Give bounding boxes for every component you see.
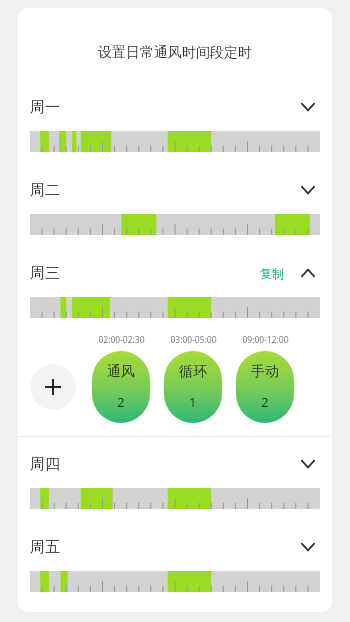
staticText: 周二 [30, 181, 60, 200]
button[interactable]: 循环 [164, 351, 222, 423]
staticText: 03:00-05:00 [170, 334, 217, 346]
staticText: 通风 [107, 363, 135, 381]
staticText: 09:00-12:00 [242, 334, 289, 346]
staticText: 周一 [30, 98, 60, 117]
button[interactable] [30, 131, 320, 152]
button[interactable]: 周四 [30, 445, 320, 483]
staticText: 循环 [179, 363, 207, 381]
staticText: 设置日常通风时间段定时 [98, 44, 252, 62]
button[interactable]: Collapse [296, 261, 320, 285]
staticText: 周五 [30, 538, 60, 557]
button[interactable]: Expand [296, 178, 320, 202]
button[interactable] [30, 571, 320, 592]
button[interactable]: 周五 [30, 528, 320, 566]
staticText: 手动 [251, 363, 279, 381]
button[interactable]: 复制 [258, 266, 286, 281]
button[interactable]: Add schedule [30, 364, 76, 410]
button[interactable]: 周二 [30, 171, 320, 209]
button[interactable]: Expand [296, 95, 320, 119]
staticText: 2 [117, 393, 125, 411]
button[interactable]: Expand [296, 452, 320, 476]
button[interactable]: Expand [296, 535, 320, 559]
staticText: 复制 [260, 266, 284, 281]
button[interactable]: 周一 [30, 88, 320, 126]
button[interactable] [30, 214, 320, 235]
button[interactable]: 周三 [30, 254, 320, 292]
staticText: 周四 [30, 455, 60, 474]
staticText: 周三 [30, 264, 60, 283]
button[interactable]: 手动 [236, 351, 294, 423]
staticText: 02:00-02:30 [98, 334, 145, 346]
button[interactable] [30, 488, 320, 509]
staticText: 1 [189, 393, 197, 411]
button[interactable] [30, 297, 320, 318]
button[interactable]: 通风 [92, 351, 150, 423]
staticText: 2 [261, 393, 269, 411]
